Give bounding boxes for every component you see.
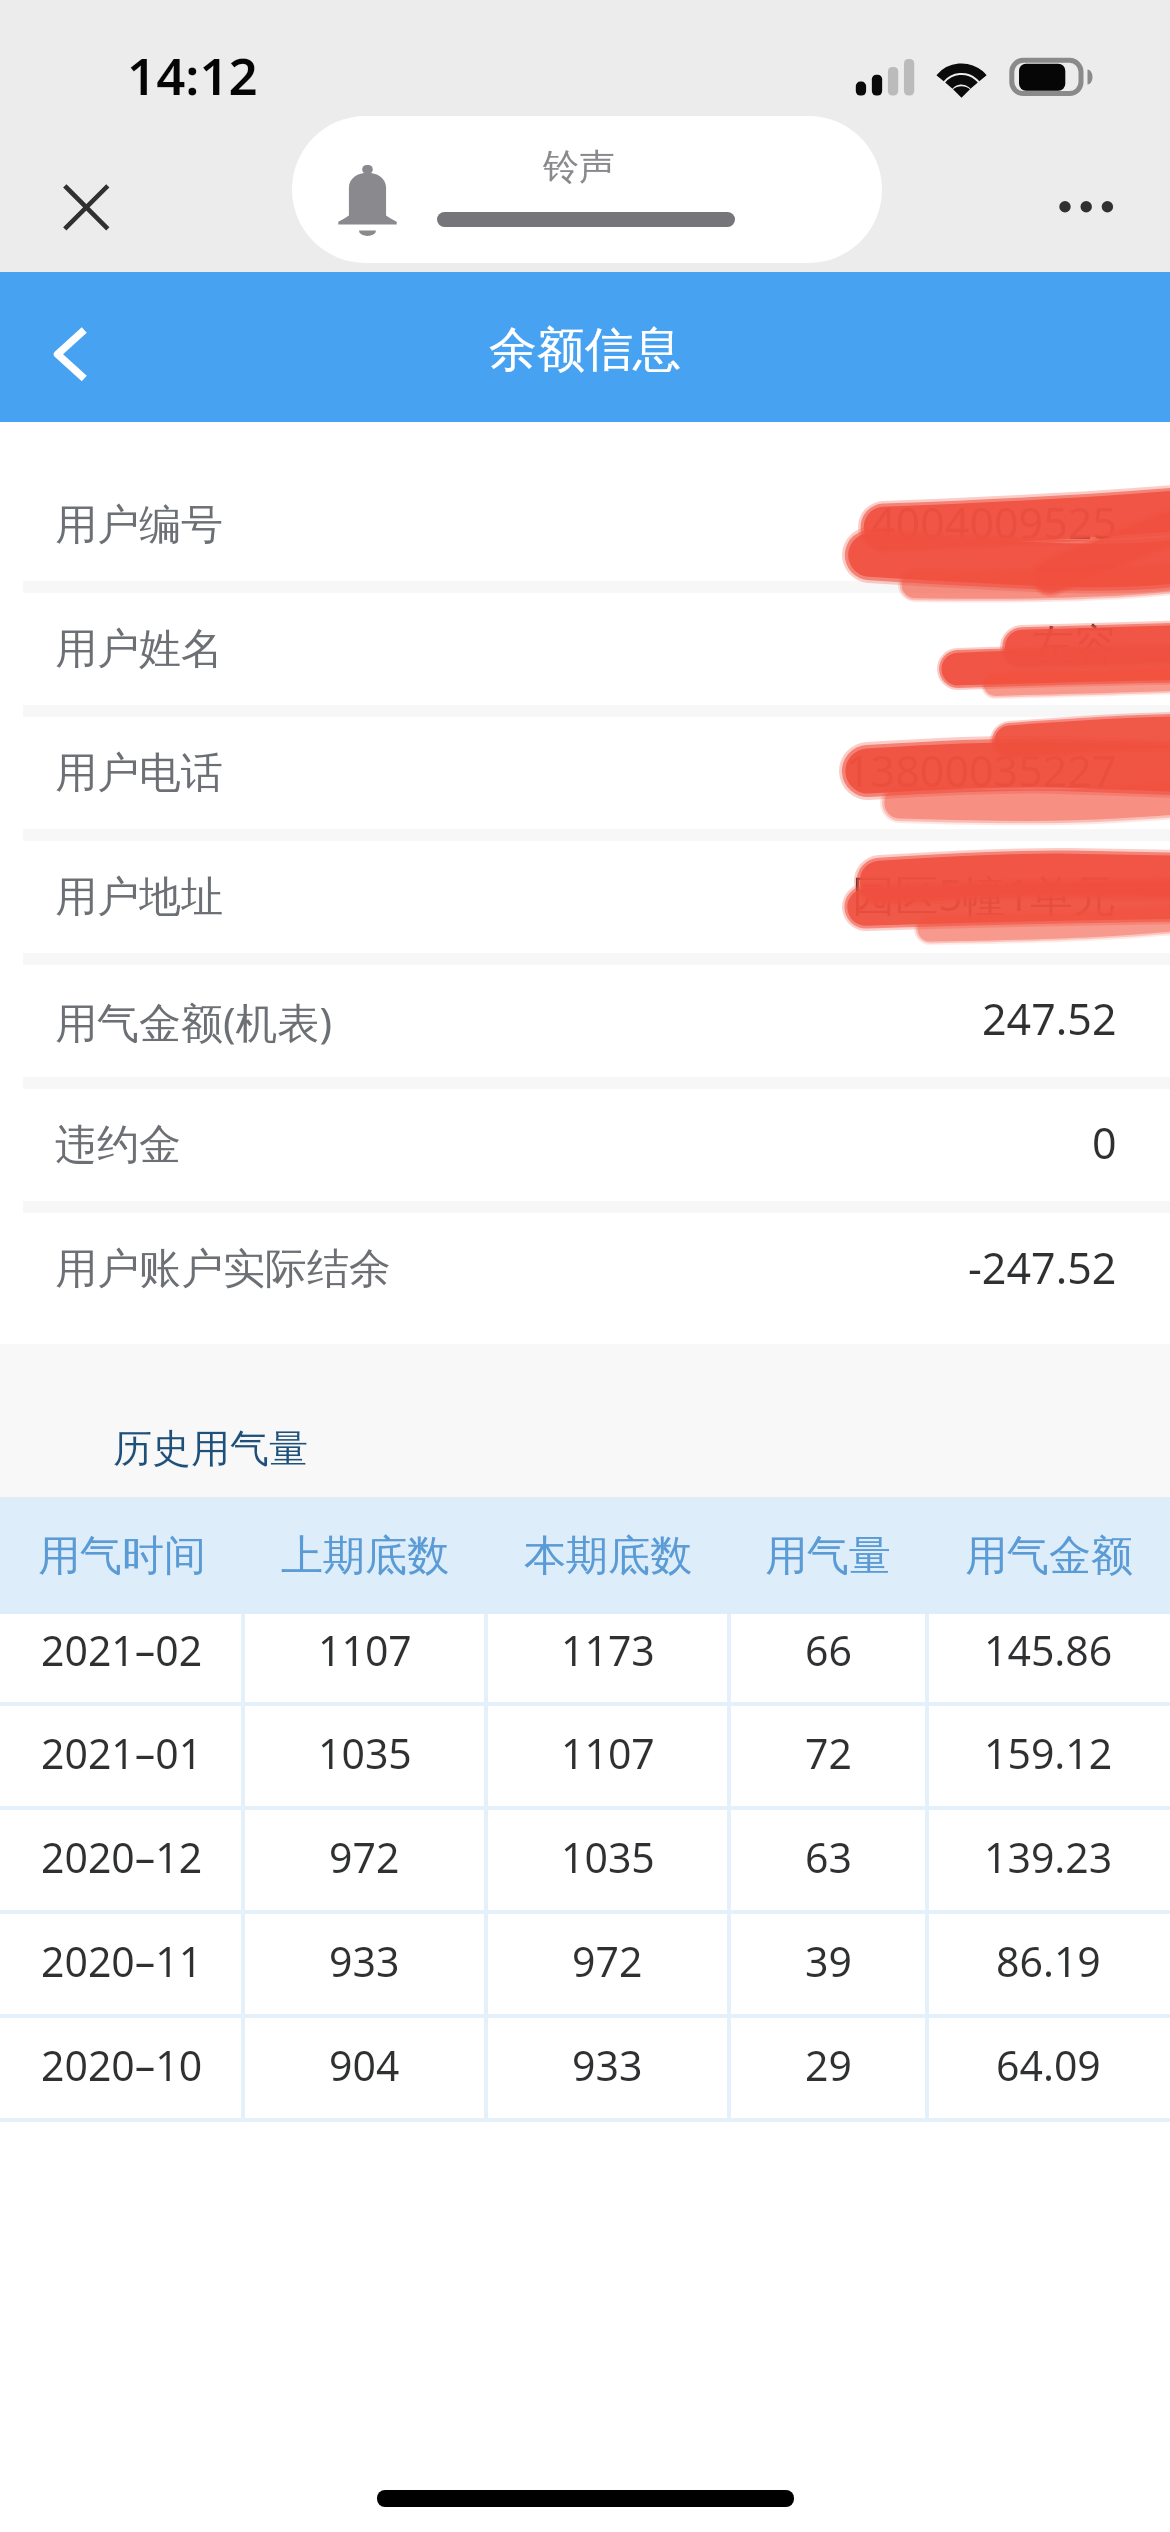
button[interactable]: 2020–12 — [0, 1810, 1170, 1914]
staticText: 972 — [572, 1933, 643, 1989]
staticText: 1173 — [561, 1622, 655, 1678]
staticText: 29 — [805, 2037, 852, 2093]
staticText: 2021–01 — [41, 1725, 203, 1781]
button[interactable]: 2021–02 — [0, 1614, 1170, 1706]
button[interactable]: 2020–10 — [0, 2018, 1170, 2122]
staticText: 用气金额 — [965, 1530, 1133, 1583]
staticText: 左容 — [1031, 619, 1117, 673]
staticText: 用户地址 — [55, 871, 223, 924]
staticText: 86.19 — [996, 1933, 1101, 1989]
staticText: 39 — [805, 1933, 852, 1989]
staticText: 0 — [1092, 1113, 1117, 1172]
staticText: 933 — [572, 2037, 643, 2093]
staticText: 历史用气量 — [113, 1424, 308, 1473]
button[interactable]: 用户编号 — [0, 469, 1170, 593]
staticText: 1107 — [561, 1725, 655, 1781]
button[interactable]: 用户电话 — [0, 717, 1170, 841]
button[interactable]: 用气金额(机表) — [0, 965, 1170, 1089]
button[interactable]: Back — [22, 294, 114, 400]
staticText: 用气量 — [765, 1530, 891, 1583]
staticText: 用户账户实际结余 — [55, 1243, 391, 1296]
staticText: 1035 — [318, 1725, 412, 1781]
staticText: 上期底数 — [281, 1530, 449, 1583]
staticText: 违约金 — [55, 1119, 181, 1172]
button[interactable]: 用户姓名 — [0, 593, 1170, 717]
staticText: 159.12 — [984, 1725, 1113, 1781]
staticText: 2020–11 — [41, 1933, 203, 1989]
staticText: 13800035227 — [846, 741, 1117, 800]
staticText: 2020–10 — [41, 2037, 203, 2093]
staticText: 铃声 — [543, 144, 615, 189]
staticText: 园区5幢1单元 — [852, 865, 1117, 924]
button[interactable]: 用户账户实际结余 — [0, 1213, 1170, 1325]
staticText: 139.23 — [984, 1829, 1113, 1885]
staticText: 64.09 — [996, 2037, 1101, 2093]
staticText: 972 — [329, 1829, 400, 1885]
button[interactable]: 违约金 — [0, 1089, 1170, 1213]
staticText: 用户电话 — [55, 747, 223, 800]
staticText: 904 — [329, 2037, 400, 2093]
button[interactable]: More options — [1035, 177, 1137, 237]
staticText: 2021–02 — [41, 1622, 203, 1678]
staticText: 14:12 — [127, 40, 258, 109]
staticText: 用气时间 — [38, 1530, 206, 1583]
staticText: 用户编号 — [55, 499, 223, 552]
staticText: 145.86 — [984, 1622, 1113, 1678]
staticText: 1035 — [561, 1829, 655, 1885]
staticText: 用气金额(机表) — [55, 993, 333, 1050]
staticText: 72 — [805, 1725, 852, 1781]
staticText: 1107 — [318, 1622, 412, 1678]
staticText: 余额信息 — [489, 320, 681, 380]
staticText: 4004009525 — [871, 493, 1117, 552]
button[interactable]: 2020–11 — [0, 1914, 1170, 2018]
staticText: 用户姓名 — [55, 623, 223, 676]
staticText: 247.52 — [982, 989, 1117, 1048]
staticText: 本期底数 — [524, 1530, 692, 1583]
button[interactable]: 2021–01 — [0, 1706, 1170, 1810]
button[interactable]: 用户地址 — [0, 841, 1170, 965]
staticText: 2020–12 — [41, 1829, 203, 1885]
staticText: -247.52 — [968, 1238, 1117, 1297]
staticText: 933 — [329, 1933, 400, 1989]
staticText: 63 — [805, 1829, 852, 1885]
staticText: 66 — [805, 1622, 852, 1678]
button[interactable]: Close — [41, 162, 129, 250]
